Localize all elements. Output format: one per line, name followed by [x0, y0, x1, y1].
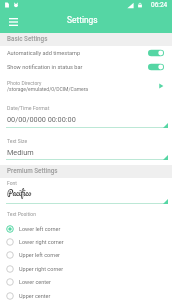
- staticText: Lower center: [19, 279, 51, 285]
- staticText: Automatically add timestamp: [7, 50, 81, 57]
- staticText: Medium: [7, 148, 34, 157]
- button[interactable]: Upper center: [0, 289, 172, 302]
- staticText: Upper right corner: [19, 266, 64, 272]
- staticText: Settings: [67, 15, 98, 25]
- staticText: Date/Time Format: [7, 105, 50, 111]
- button[interactable]: Open navigation menu: [4, 13, 22, 31]
- button[interactable]: Lower left corner: [0, 222, 172, 235]
- button[interactable]: Show notification in status bar: [0, 60, 172, 74]
- button[interactable]: Date/Time Format: [0, 100, 172, 128]
- staticText: Pacifico: [7, 186, 32, 199]
- staticText: 00/00/0000 00:00:00: [7, 115, 76, 124]
- button[interactable]: Automatically add timestamp: [0, 46, 172, 60]
- staticText: Font: [7, 180, 17, 186]
- staticText: Upper left corner: [19, 252, 60, 258]
- staticText: Basic Settings: [7, 35, 48, 42]
- staticText: Premium Settings: [7, 167, 58, 174]
- button[interactable]: Upper left corner: [0, 248, 172, 261]
- staticText: Text Size: [7, 138, 28, 144]
- staticText: /storage/emulated/0/DCIM/Camera: [7, 86, 89, 92]
- staticText: Photo Directory: [7, 80, 42, 86]
- button[interactable]: Lower center: [0, 275, 172, 288]
- staticText: Lower right corner: [19, 239, 64, 245]
- button[interactable]: Upper right corner: [0, 262, 172, 275]
- staticText: 06:24: [151, 1, 168, 9]
- button[interactable]: Lower right corner: [0, 235, 172, 248]
- staticText: Text Position: [7, 211, 36, 217]
- button[interactable]: Photo Directory: [0, 74, 172, 98]
- button[interactable]: Font: [0, 178, 172, 203]
- staticText: Upper center: [19, 293, 51, 299]
- staticText: Show notification in status bar: [7, 64, 83, 71]
- button[interactable]: Text Size: [0, 133, 172, 160]
- staticText: Lower left corner: [19, 226, 61, 232]
